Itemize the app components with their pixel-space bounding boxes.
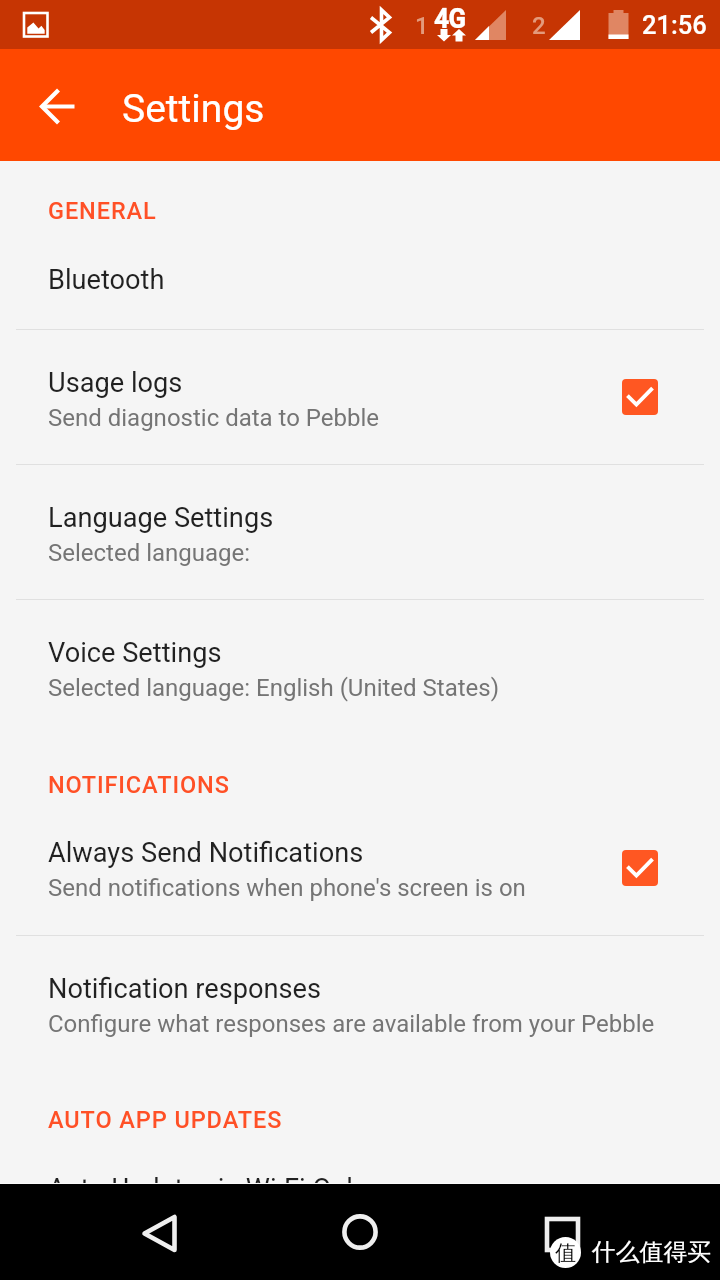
- staticText: Selected language: English (United State…: [48, 674, 500, 702]
- button[interactable]: Back: [124, 1185, 196, 1257]
- button[interactable]: Back: [26, 74, 90, 138]
- button[interactable]: Recent apps: [524, 1197, 596, 1269]
- staticText: 什么值得买: [592, 1237, 711, 1267]
- staticText: Settings: [122, 86, 265, 132]
- button[interactable]: Toggle Always Send Notifications: [616, 844, 664, 892]
- button[interactable]: Language Settings: [0, 465, 720, 599]
- staticText: 1: [415, 12, 429, 40]
- staticText: Voice Settings: [48, 637, 222, 669]
- staticText: AUTO APP UPDATES: [48, 1106, 283, 1134]
- staticText: NOTIFICATIONS: [48, 771, 230, 799]
- staticText: Always Send Notifications: [48, 837, 364, 869]
- button[interactable]: Voice Settings: [0, 600, 720, 735]
- staticText: Notification responses: [48, 973, 321, 1005]
- staticText: Selected language:: [48, 539, 251, 567]
- button[interactable]: Bluetooth: [0, 227, 720, 329]
- button[interactable]: Home: [324, 1196, 396, 1268]
- staticText: 2: [532, 12, 546, 40]
- staticText: Language Settings: [48, 502, 274, 534]
- staticText: Send notifications when phone's screen i…: [48, 874, 526, 902]
- staticText: Configure what responses are available f…: [48, 1010, 655, 1038]
- staticText: 4G: [434, 5, 466, 34]
- staticText: 值: [555, 1240, 576, 1266]
- staticText: Auto Update via Wi-Fi Only: [48, 1173, 366, 1205]
- button[interactable]: Usage logs: [0, 330, 720, 464]
- button[interactable]: Toggle Usage logs: [616, 373, 664, 421]
- button[interactable]: Auto Update via Wi-Fi Only: [0, 1136, 720, 1236]
- staticText: Bluetooth: [48, 264, 165, 296]
- staticText: 21:56: [642, 10, 707, 40]
- button[interactable]: Notification responses: [0, 936, 720, 1070]
- button[interactable]: Always Send Notifications: [0, 800, 720, 935]
- staticText: GENERAL: [48, 197, 157, 225]
- staticText: Send diagnostic data to Pebble: [48, 404, 380, 432]
- staticText: Usage logs: [48, 367, 183, 399]
